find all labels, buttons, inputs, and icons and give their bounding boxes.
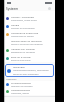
staticText: Mensen delen en toestellen (11, 39, 42, 42)
staticText: Sneltoetsen, snelle acties (11, 19, 37, 22)
staticText: Systeemnavigatie (11, 81, 31, 84)
button[interactable]: Google (4, 22, 55, 30)
button[interactable]: Back-up & herstel (4, 54, 55, 62)
button[interactable]: Systeemnavigatie (4, 81, 55, 88)
staticText: Bijgewerkt tot vandaag (11, 51, 35, 54)
staticText: Updates van systeem (11, 47, 35, 50)
staticText: Toetsen / snelkoppel (11, 15, 35, 18)
button[interactable]: Search (48, 7, 51, 10)
staticText: Toetsenbord onderhoud (11, 31, 39, 34)
staticText: Toegankelijkheid (11, 88, 30, 91)
staticText: bellen en app-meldingen (13, 73, 39, 76)
staticText: Services en voorkeuren (11, 27, 35, 30)
button[interactable]: Updates van systeem (4, 46, 55, 54)
staticText: Algemeen (6, 78, 17, 81)
button[interactable]: Meldingen (5, 64, 54, 77)
button[interactable]: Toegankelijkheid (4, 88, 55, 95)
staticText: Meldingen (13, 65, 25, 68)
staticText: Gebaren en knoppen (11, 85, 33, 88)
staticText: Onderhoud en opslag (11, 35, 34, 38)
button[interactable]: Toetsen / snelkoppel (4, 14, 55, 22)
staticText: Back-up naar Drive (11, 59, 31, 62)
staticText: Systeem (6, 7, 19, 11)
button[interactable]: Toetsenbord onderhoud (4, 30, 55, 38)
button[interactable]: Mensen delen en toestellen (4, 38, 55, 46)
staticText: Google (11, 23, 20, 26)
staticText: Back-up & herstel (11, 55, 31, 58)
staticText: Weergave, geluid (11, 92, 29, 95)
staticText: Meldingsgeschiedenis, gesprekken (13, 69, 49, 72)
staticText: Delen in de buurt met anderen (11, 43, 43, 46)
